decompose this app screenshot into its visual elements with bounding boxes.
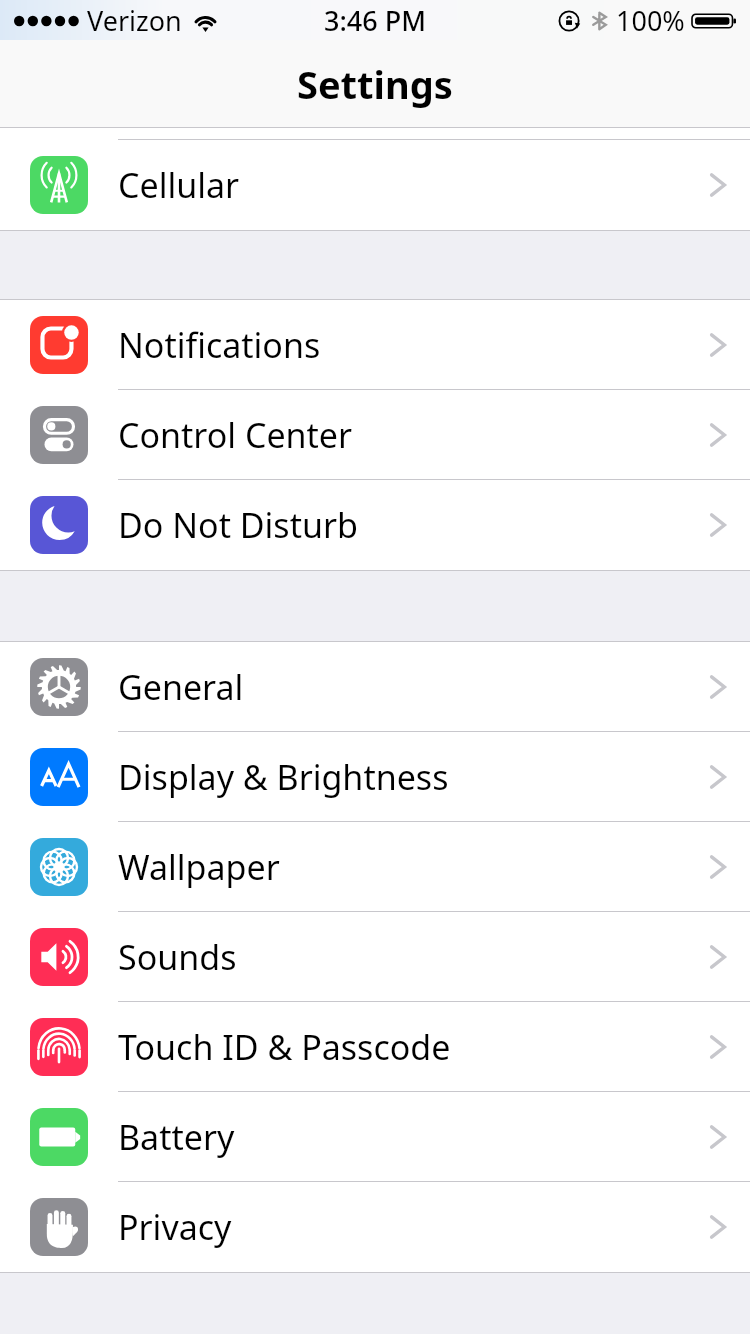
- button[interactable]: Notifications: [0, 300, 750, 390]
- button[interactable]: Control Center: [0, 390, 750, 480]
- staticText: 100%: [616, 2, 685, 39]
- staticText: Wallpaper: [118, 844, 708, 890]
- button[interactable]: Battery: [0, 1092, 750, 1182]
- staticText: Verizon: [87, 2, 182, 39]
- button[interactable]: Do Not Disturb: [0, 480, 750, 570]
- staticText: Cellular: [118, 162, 708, 208]
- staticText: Control Center: [118, 412, 708, 458]
- staticText: Privacy: [118, 1204, 708, 1250]
- button[interactable]: Wallpaper: [0, 822, 750, 912]
- staticText: General: [118, 664, 708, 710]
- staticText: Settings: [297, 58, 453, 110]
- button[interactable]: Touch ID & Passcode: [0, 1002, 750, 1092]
- staticText: Display & Brightness: [118, 754, 708, 800]
- staticText: Notifications: [118, 322, 708, 368]
- button[interactable]: Cellular: [0, 140, 750, 230]
- button[interactable]: General: [0, 642, 750, 732]
- staticText: Sounds: [118, 934, 708, 980]
- staticText: Touch ID & Passcode: [118, 1024, 708, 1070]
- button[interactable]: Privacy: [0, 1182, 750, 1272]
- staticText: Do Not Disturb: [118, 502, 708, 548]
- button[interactable]: Display & Brightness: [0, 732, 750, 822]
- staticText: 3:46 PM: [324, 2, 426, 39]
- button[interactable]: Sounds: [0, 912, 750, 1002]
- staticText: Battery: [118, 1114, 708, 1160]
